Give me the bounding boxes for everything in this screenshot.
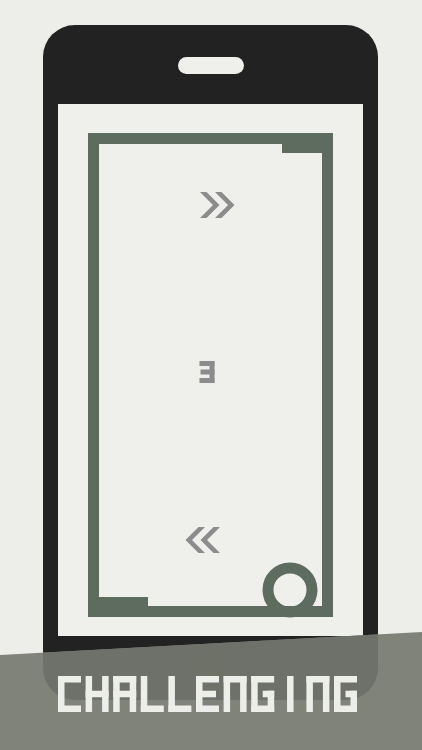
button[interactable]: Challenging level preview — [0, 0, 422, 750]
